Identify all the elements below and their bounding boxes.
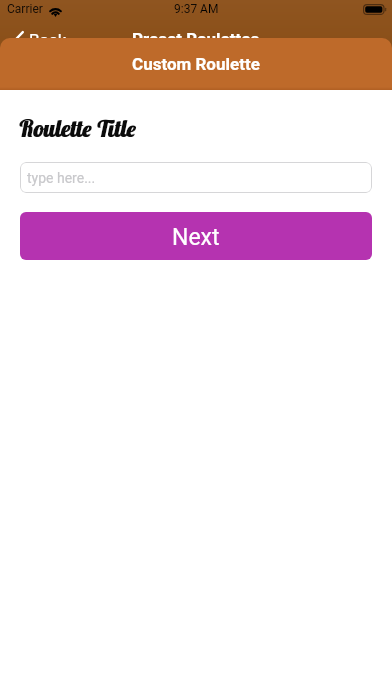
staticText: Next	[172, 224, 220, 251]
staticText: Roulette Title	[19, 114, 137, 143]
staticText: Custom Roulette	[132, 54, 260, 74]
staticText: 9:37 AM	[174, 2, 219, 16]
button[interactable]: Next	[20, 212, 372, 260]
staticText: Preset Roulettes	[132, 29, 260, 49]
button[interactable]: type here...	[20, 162, 372, 193]
staticText: Roulette Title	[18, 114, 136, 143]
staticText: type here...	[27, 170, 96, 186]
staticText: Back	[29, 30, 67, 50]
staticText: Carrier	[7, 2, 43, 16]
